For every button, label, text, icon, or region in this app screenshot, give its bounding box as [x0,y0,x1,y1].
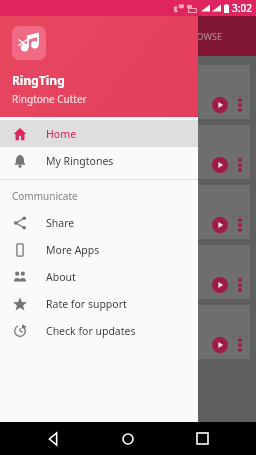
staticText: About [46,270,76,284]
button[interactable]: Home [0,120,198,147]
staticText: BROWSE [185,30,222,42]
staticText: Share [46,216,75,230]
button[interactable]: Rate for support [0,290,198,317]
staticText: RingTing [12,72,65,88]
staticText: Check for updates [46,324,136,338]
button[interactable]: More Apps [0,236,198,263]
button[interactable]: Check for updates [0,317,198,344]
staticText: 3:02 [232,1,252,15]
staticText: More Apps [46,243,100,257]
button[interactable]: Home [108,422,148,455]
button[interactable]: Share [0,209,198,236]
staticText: Home [46,127,77,141]
staticText: Rate for support [46,297,127,311]
staticText: Ringtone Cutter [12,92,87,106]
button[interactable]: About [0,263,198,290]
button[interactable]: My Ringtones [0,147,198,174]
staticText: Communicate [12,189,78,203]
staticText: My Ringtones [46,154,114,168]
button[interactable]: Recents [182,422,222,455]
button[interactable]: Back [34,422,74,455]
